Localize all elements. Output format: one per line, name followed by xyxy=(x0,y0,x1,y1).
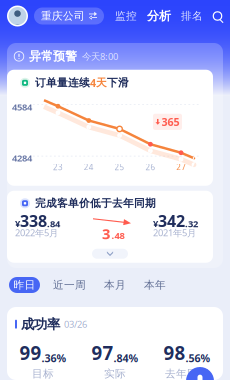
staticText: 排名 xyxy=(181,9,203,22)
button[interactable]: 本月 xyxy=(104,278,126,291)
staticText: 去年同期 xyxy=(165,367,209,380)
staticText: 目标 xyxy=(32,367,54,380)
staticText: 342 xyxy=(158,210,185,231)
staticText: 4584 xyxy=(12,101,32,113)
staticText: 成功率 xyxy=(21,316,60,332)
button[interactable]: 本年 xyxy=(144,278,166,291)
staticText: 99 xyxy=(19,340,41,365)
staticText: 26 xyxy=(145,162,155,172)
button[interactable]: 昨日 xyxy=(9,277,40,293)
staticText: 昨日 xyxy=(13,278,35,291)
staticText: .36% xyxy=(41,351,66,365)
button[interactable]: 近一周 xyxy=(53,278,86,291)
staticText: 监控 xyxy=(115,9,137,22)
staticText: 完成客单价低于去年同期 xyxy=(35,197,156,210)
button[interactable]: Expand xyxy=(92,249,128,259)
staticText: ¥ xyxy=(15,217,20,229)
staticText: 重庆公司 xyxy=(41,9,85,22)
button[interactable]: Profile xyxy=(7,5,28,26)
staticText: 2021年5月 xyxy=(153,226,196,239)
staticText: 03/26 xyxy=(64,318,87,330)
staticText: .84 xyxy=(47,217,60,230)
staticText: 365 xyxy=(161,115,179,129)
staticText: 下滑 xyxy=(107,76,129,89)
staticText: ¥ xyxy=(153,217,158,229)
button[interactable]: 重庆公司 xyxy=(34,7,104,24)
staticText: 4284 xyxy=(12,152,32,164)
button[interactable]: 排名 xyxy=(178,9,206,22)
button[interactable]: 监控 xyxy=(112,9,140,22)
staticText: 本月 xyxy=(104,278,126,291)
button[interactable]: 分析 xyxy=(144,9,174,23)
staticText: 今天8:00 xyxy=(82,50,118,63)
staticText: 3 xyxy=(102,224,110,243)
button[interactable]: Voice input xyxy=(186,367,214,380)
staticText: 实际 xyxy=(104,367,126,380)
staticText: .56% xyxy=(185,351,210,365)
staticText: 97 xyxy=(91,340,113,365)
staticText: 23 xyxy=(53,162,63,172)
staticText: .32 xyxy=(185,217,198,230)
staticText: 27 xyxy=(176,162,186,172)
staticText: 4 xyxy=(90,76,96,90)
staticText: 本年 xyxy=(144,278,166,291)
staticText: 近一周 xyxy=(53,278,86,291)
staticText: .48 xyxy=(111,229,124,242)
staticText: 分析 xyxy=(147,9,171,23)
staticText: 25 xyxy=(115,162,125,172)
staticText: 98 xyxy=(163,340,185,365)
button[interactable]: Search xyxy=(212,10,223,21)
staticText: .84% xyxy=(113,351,138,365)
staticText: 338 xyxy=(20,210,47,231)
staticText: 异常预警 xyxy=(29,49,77,64)
staticText: 24 xyxy=(84,162,94,172)
staticText: 订单量连续 xyxy=(35,76,90,89)
staticText: 2022年5月 xyxy=(15,226,58,239)
staticText: 天 xyxy=(96,76,107,89)
